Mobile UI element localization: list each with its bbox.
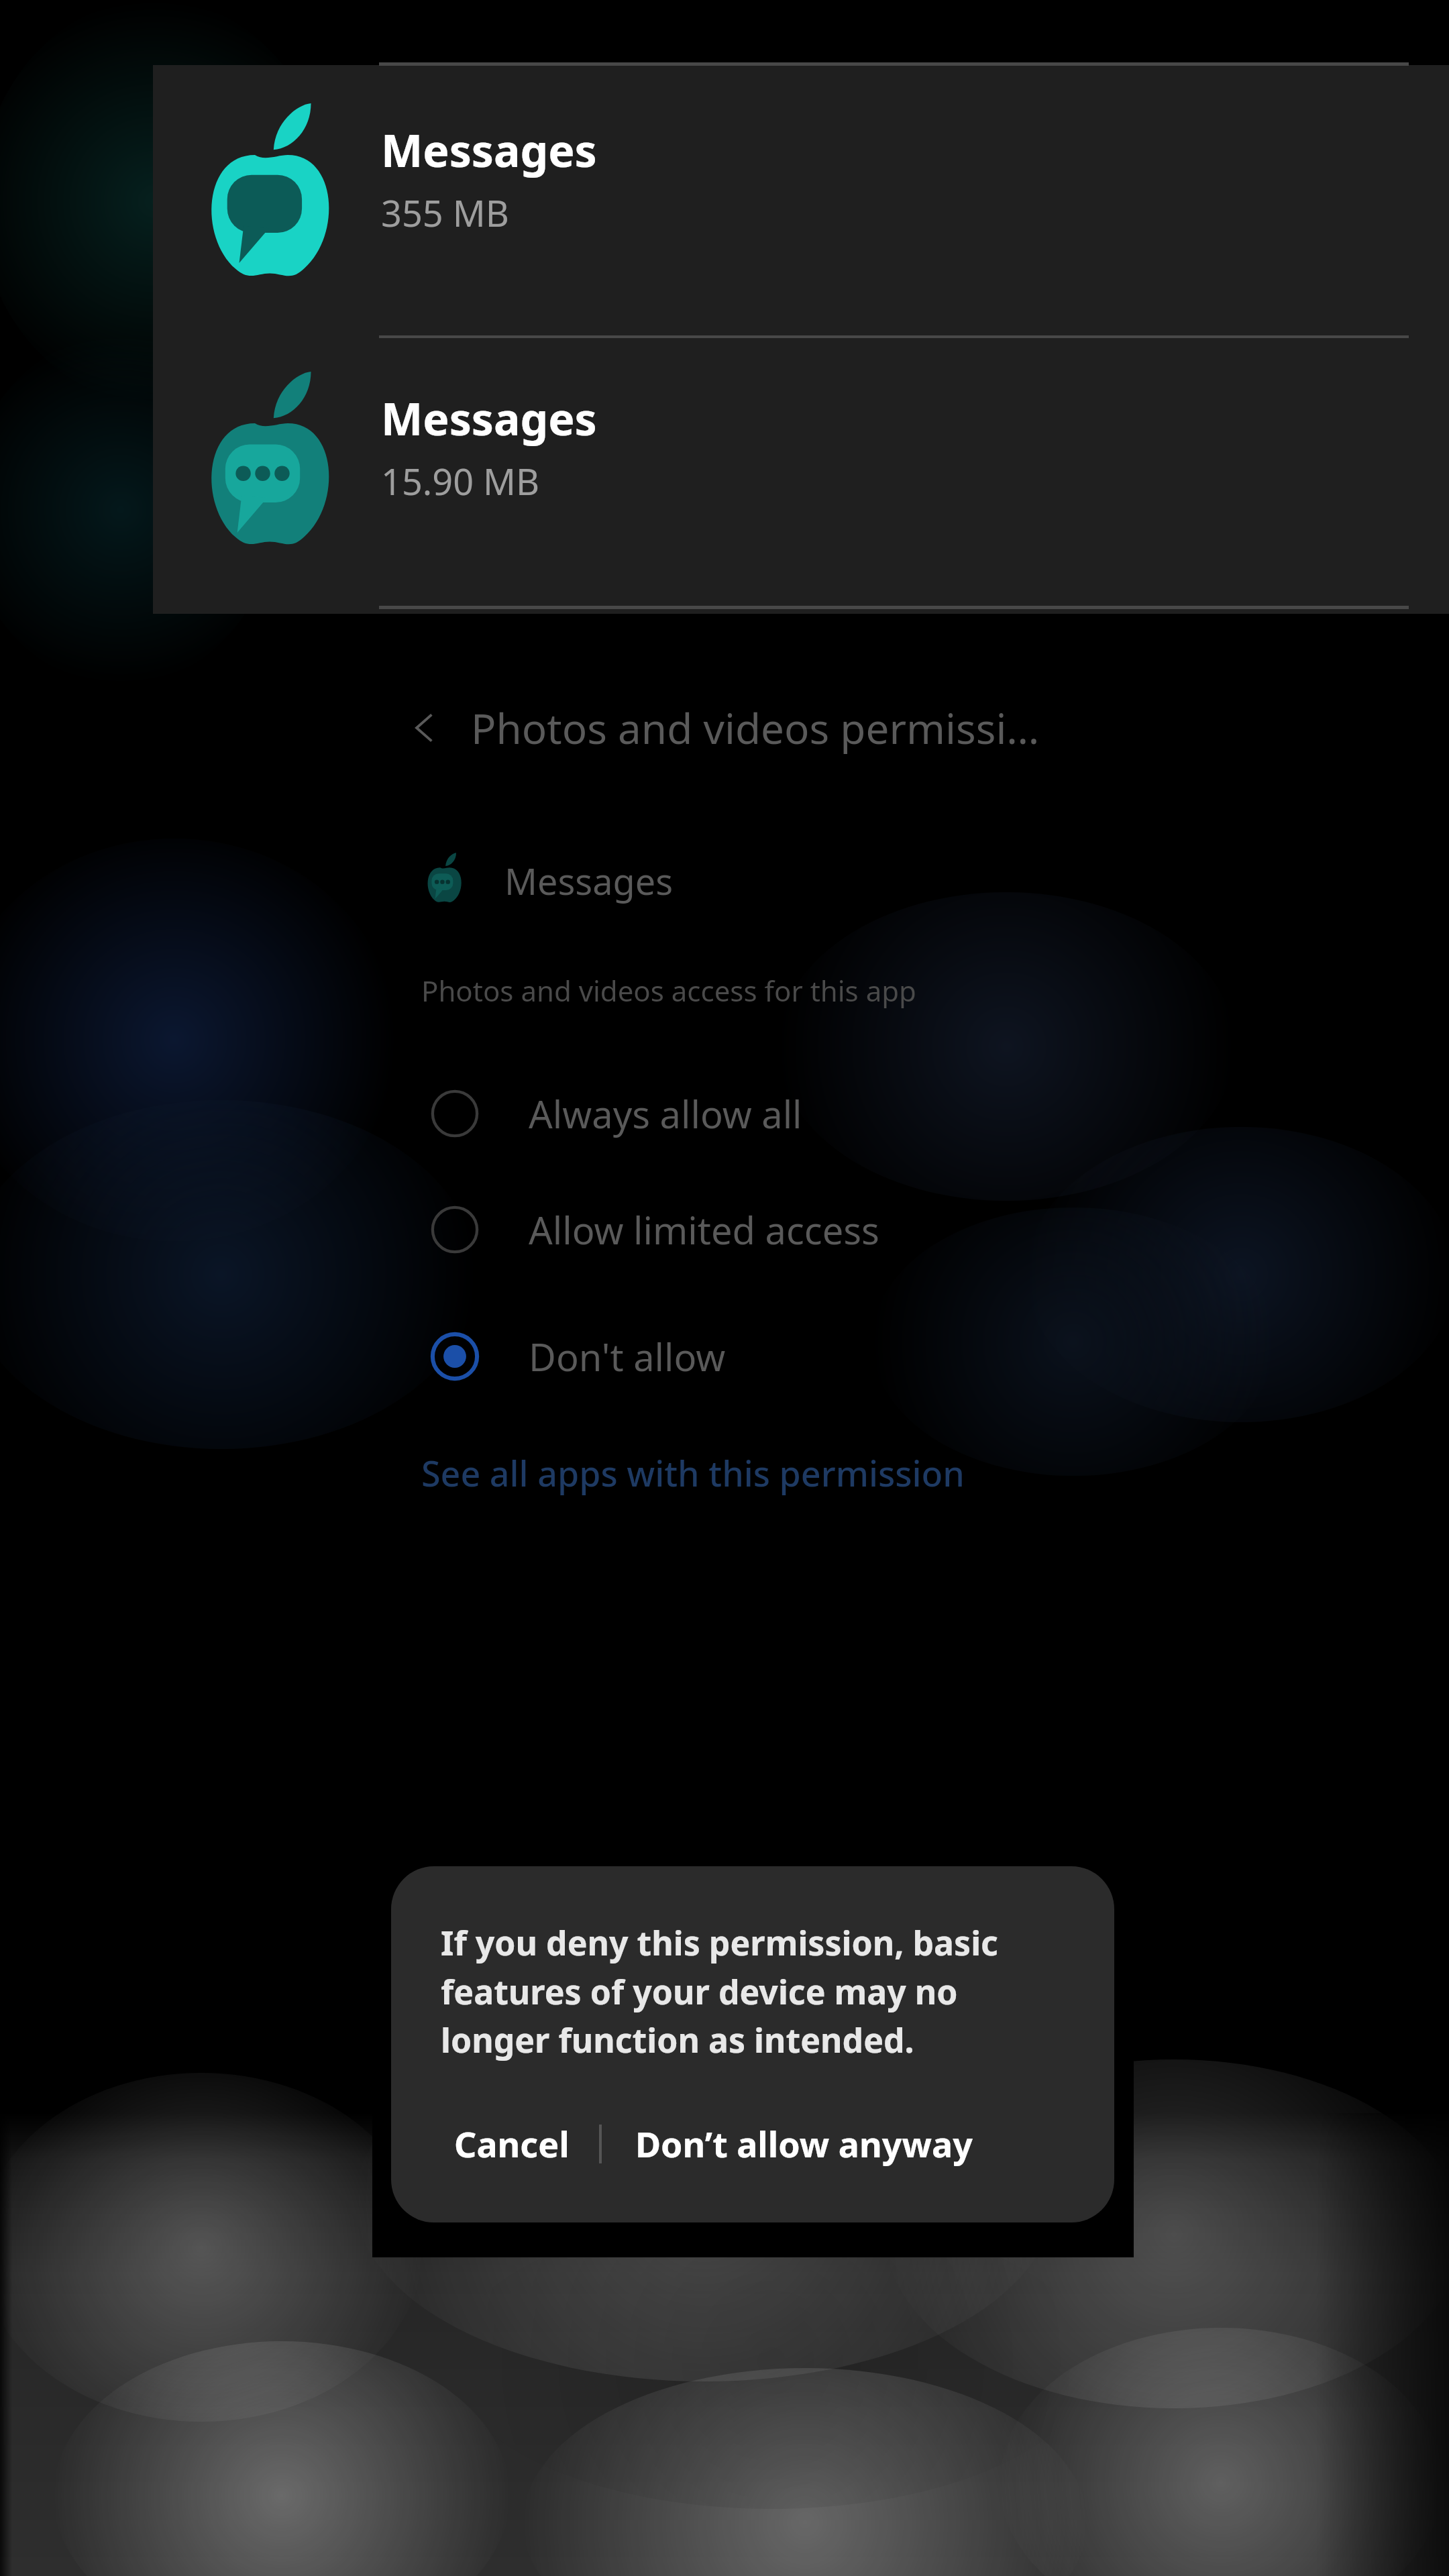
- button[interactable]: Allow limited access: [402, 1183, 1073, 1277]
- staticText: Cancel: [454, 2120, 570, 2167]
- button[interactable]: Messages: [416, 844, 673, 918]
- button[interactable]: Always allow all: [402, 1067, 1073, 1161]
- staticText: Photos and videos access for this app: [421, 971, 916, 1010]
- button[interactable]: Back: [402, 684, 1040, 771]
- staticText: Always allow all: [529, 1088, 802, 1139]
- staticText: See all apps with this permission: [421, 1449, 965, 1497]
- staticText: Photos and videos permissi…: [471, 700, 1040, 756]
- button[interactable]: Messages: [153, 338, 1449, 606]
- staticText: Don’t allow anyway: [635, 2120, 973, 2167]
- staticText: Messages: [504, 856, 673, 906]
- staticText: Messages: [381, 119, 597, 180]
- button[interactable]: Cancel: [441, 2108, 583, 2180]
- staticText: If you deny this permission, basic featu…: [441, 1920, 1074, 2062]
- staticText: Don't allow: [529, 1331, 726, 1382]
- button[interactable]: Don’t allow anyway: [625, 2108, 983, 2180]
- staticText: 15.90 MB: [381, 456, 540, 506]
- button[interactable]: See all apps with this permission: [402, 1436, 1073, 1509]
- button[interactable]: Messages: [153, 67, 1449, 335]
- button[interactable]: Don't allow: [402, 1309, 1073, 1403]
- staticText: 355 MB: [381, 188, 509, 237]
- staticText: Messages: [381, 388, 597, 448]
- staticText: Allow limited access: [529, 1204, 879, 1255]
